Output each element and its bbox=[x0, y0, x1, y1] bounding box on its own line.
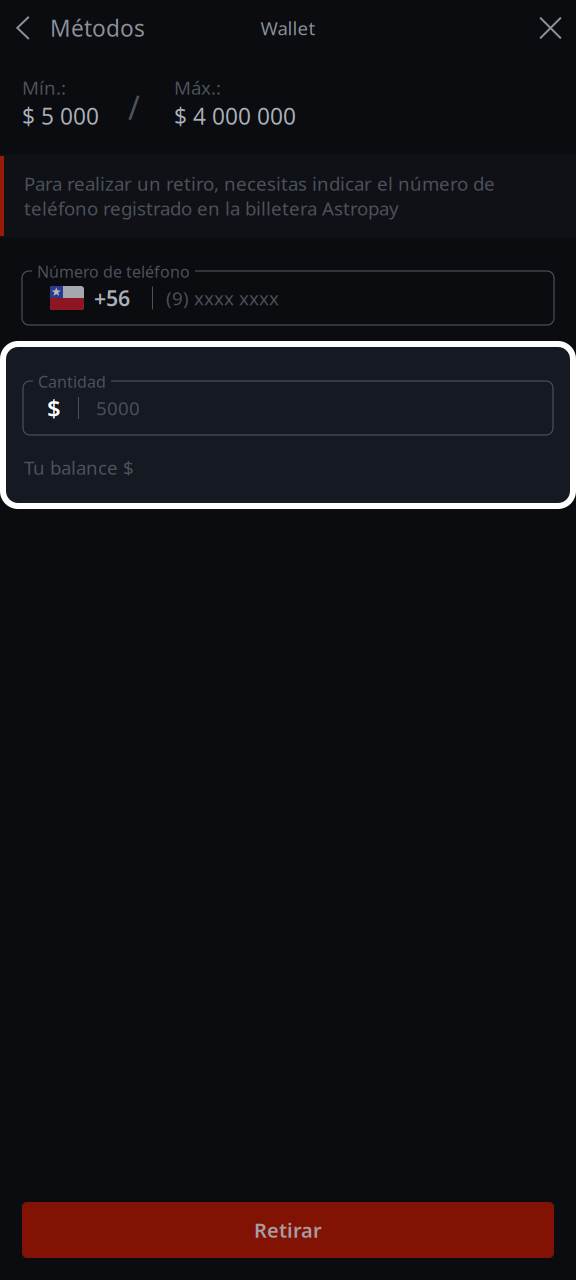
staticText: $ 5 000 bbox=[22, 101, 99, 131]
staticText: Métodos bbox=[50, 13, 145, 43]
staticText: +56 bbox=[94, 284, 130, 312]
button[interactable]: Retirar bbox=[22, 1202, 554, 1258]
staticText: (9) xxxx xxxx bbox=[166, 286, 279, 310]
staticText: $ bbox=[47, 392, 61, 424]
staticText: Mín.: bbox=[22, 75, 66, 100]
staticText: Para realizar un retiro, necesitas indic… bbox=[24, 171, 495, 221]
staticText: Tu balance $ bbox=[24, 455, 134, 480]
button[interactable]: Close bbox=[525, 0, 576, 56]
staticText: $ 4 000 000 bbox=[174, 101, 296, 131]
staticText: / bbox=[128, 86, 140, 128]
staticText: Número de teléfono bbox=[37, 261, 190, 282]
staticText: 5000 bbox=[96, 396, 140, 420]
staticText: Cantidad bbox=[38, 371, 106, 392]
button[interactable]: Métodos bbox=[0, 0, 157, 56]
staticText: Wallet bbox=[260, 16, 315, 40]
staticText: Retirar bbox=[254, 1217, 322, 1243]
staticText: Máx.: bbox=[174, 75, 221, 100]
